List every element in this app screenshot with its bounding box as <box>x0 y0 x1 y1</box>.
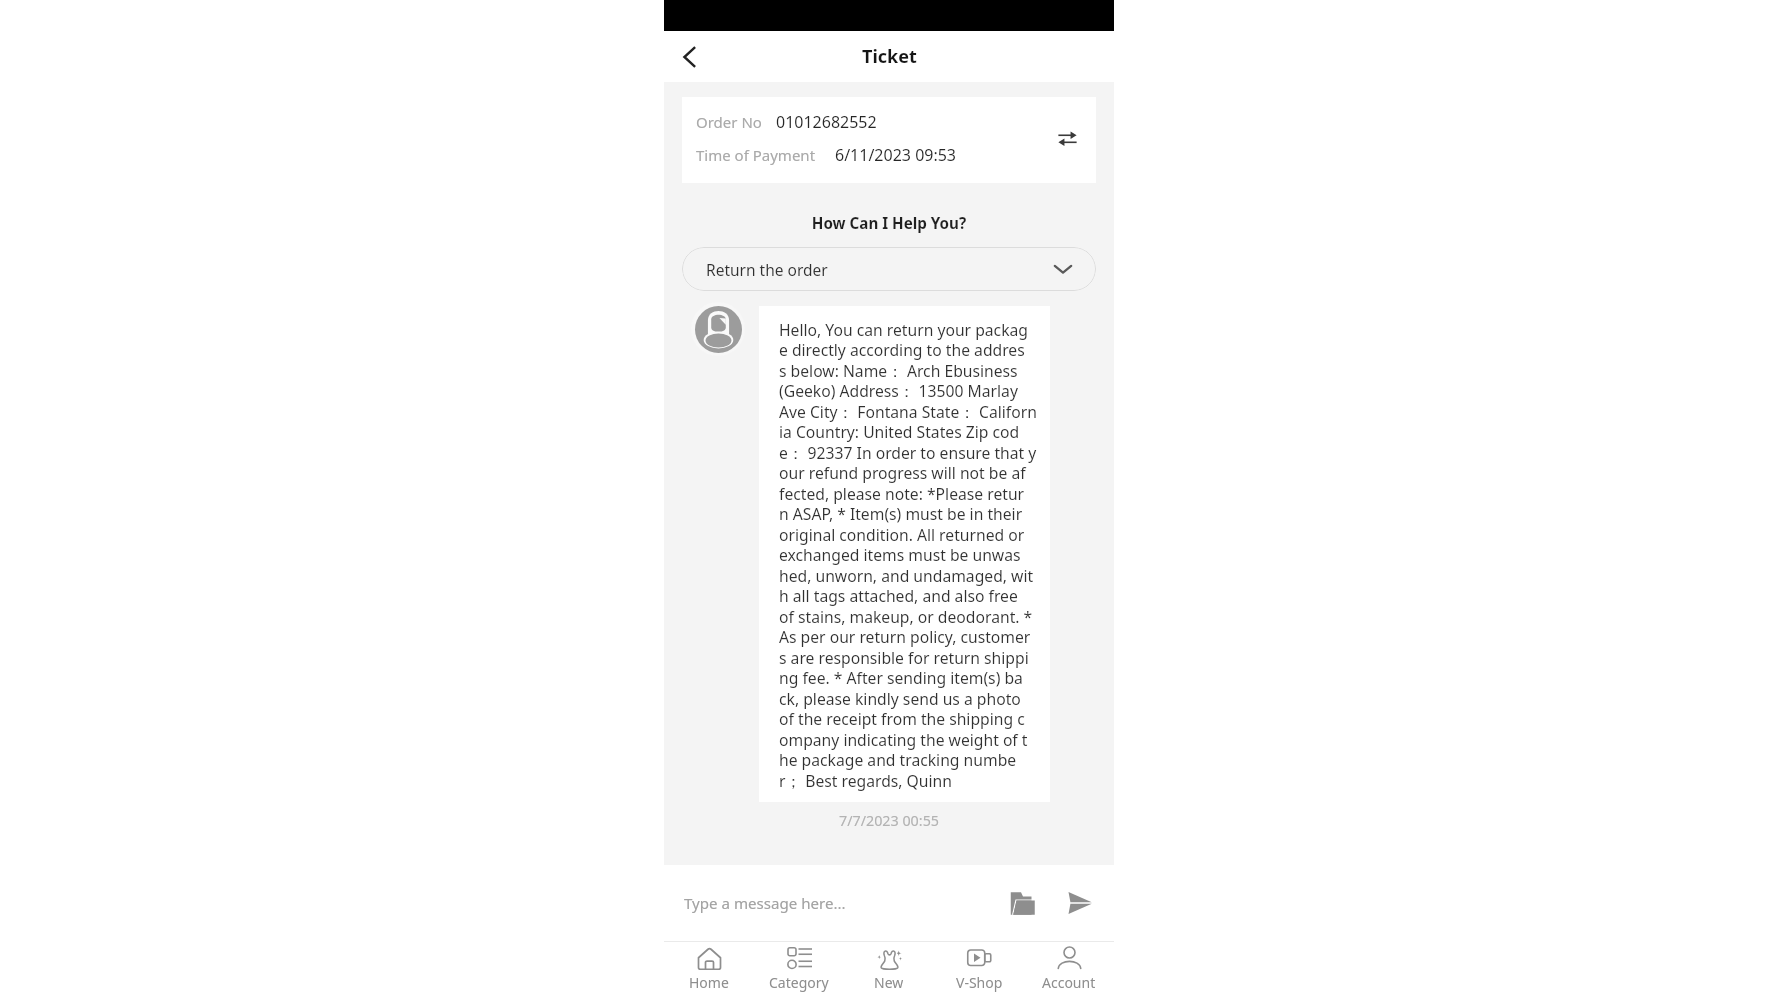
button[interactable]: V-Shop <box>934 942 1024 1000</box>
staticText: ck, please kindly send us a photo <box>779 688 1021 709</box>
staticText: Time of Payment <box>696 145 816 165</box>
staticText: 01012682552 <box>776 111 877 133</box>
button[interactable]: Account <box>1024 942 1114 1000</box>
staticText: our refund progress will not be af <box>779 462 1026 483</box>
staticText: r； Best regards, Quinn <box>779 770 953 791</box>
staticText: Order No <box>696 112 762 132</box>
staticText: ia Country: United States Zip cod <box>779 421 1020 442</box>
staticText: How Can I Help You? <box>664 213 1114 234</box>
staticText: 7/7/2023 00:55 <box>664 811 1114 830</box>
staticText: of stains, makeup, or deodorant. * <box>779 606 1033 627</box>
staticText: Return the order <box>706 259 828 280</box>
button[interactable]: Home <box>664 942 754 1000</box>
staticText: Home <box>689 973 729 992</box>
button[interactable]: Type a message here... <box>684 865 1003 941</box>
button[interactable]: Return the order <box>682 247 1096 291</box>
staticText: he package and tracking numbe <box>779 749 1017 770</box>
staticText: n ASAP, * Item(s) must be in their <box>779 503 1023 524</box>
staticText: of the receipt from the shipping c <box>779 708 1025 729</box>
staticText: hed, unworn, and undamaged, wit <box>779 565 1034 586</box>
staticText: As per our return policy, customer <box>779 626 1031 647</box>
button[interactable]: New <box>844 942 934 1000</box>
staticText: Ave City： Fontana State： Californ <box>779 401 1037 422</box>
staticText: ompany indicating the weight of t <box>779 729 1028 750</box>
staticText: h all tags attached, and also free <box>779 585 1018 606</box>
staticText: exchanged items must be unwas <box>779 544 1021 565</box>
staticText: fected, please note: *Please retur <box>779 483 1025 504</box>
staticText: Ticket <box>862 44 917 69</box>
staticText: Type a message here... <box>684 893 846 914</box>
button[interactable]: Category <box>754 942 844 1000</box>
staticText: original condition. All returned or <box>779 524 1025 545</box>
staticText: s are responsible for return shippi <box>779 647 1029 668</box>
staticText: e directly according to the addres <box>779 339 1025 360</box>
button[interactable]: Back <box>669 36 711 78</box>
staticText: Account <box>1042 973 1096 992</box>
staticText: s below: Name： Arch Ebusiness <box>779 360 1018 381</box>
staticText: V-Shop <box>956 973 1003 992</box>
button[interactable]: Attach file <box>1003 884 1041 922</box>
staticText: ng fee. * After sending item(s) ba <box>779 667 1023 688</box>
staticText: New <box>874 973 904 992</box>
staticText: (Geeko) Address： 13500 Marlay <box>779 380 1018 401</box>
button[interactable]: Order No <box>682 97 1096 183</box>
staticText: 6/11/2023 09:53 <box>835 144 957 166</box>
staticText: Category <box>769 973 829 992</box>
staticText: Hello, You can return your packag <box>779 319 1028 340</box>
button[interactable]: Send <box>1061 884 1099 922</box>
button[interactable]: Swap order <box>1052 123 1082 153</box>
staticText: e： 92337 In order to ensure that y <box>779 442 1037 463</box>
